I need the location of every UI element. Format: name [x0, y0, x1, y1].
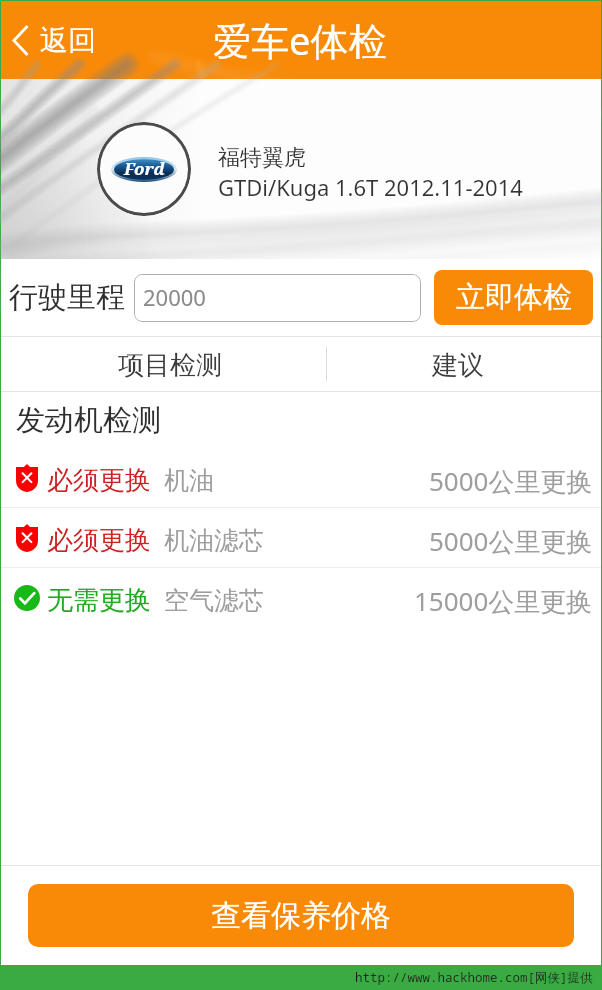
staticText: 空气滤芯 — [164, 585, 264, 616]
staticText: 5000公里更换 — [429, 463, 593, 499]
button[interactable]: 项目检测 — [1, 337, 326, 391]
button[interactable]: 必须更换 — [1, 448, 601, 507]
button[interactable]: 无需更换 — [1, 568, 601, 627]
button[interactable]: 查看保养价格 — [28, 884, 574, 947]
staticText: 20000 — [143, 282, 206, 312]
button[interactable]: 20000 — [134, 274, 421, 322]
staticText: 建议 — [432, 349, 484, 382]
staticText: http://www.hackhome.com[网侠]提供 — [355, 969, 593, 986]
staticText: 必须更换 — [47, 524, 151, 557]
staticText: 机油 — [164, 465, 214, 496]
other: 返回 — [13, 25, 28, 56]
staticText: 福特翼虎 — [218, 144, 306, 172]
button[interactable]: 建议 — [326, 337, 601, 391]
staticText: 发动机检测 — [16, 402, 161, 439]
button[interactable]: 必须更换 — [1, 508, 601, 567]
staticText: 查看保养价格 — [211, 897, 391, 935]
staticText: 行驶里程 — [9, 279, 125, 316]
staticText: GTDi/Kuga 1.6T 2012.11-2014 — [218, 172, 523, 202]
staticText: 返回 — [40, 23, 96, 58]
button[interactable]: 返回 — [1, 13, 114, 68]
staticText: 项目检测 — [118, 349, 222, 382]
staticText: 爱车e体检 — [213, 14, 387, 66]
staticText: 机油滤芯 — [164, 525, 264, 556]
button[interactable]: 立即体检 — [434, 270, 593, 325]
staticText: 无需更换 — [47, 584, 151, 617]
staticText: 必须更换 — [47, 464, 151, 497]
staticText: 立即体检 — [456, 279, 572, 316]
staticText: 15000公里更换 — [414, 583, 593, 619]
staticText: 5000公里更换 — [429, 523, 593, 559]
staticText: Ford — [124, 157, 165, 180]
